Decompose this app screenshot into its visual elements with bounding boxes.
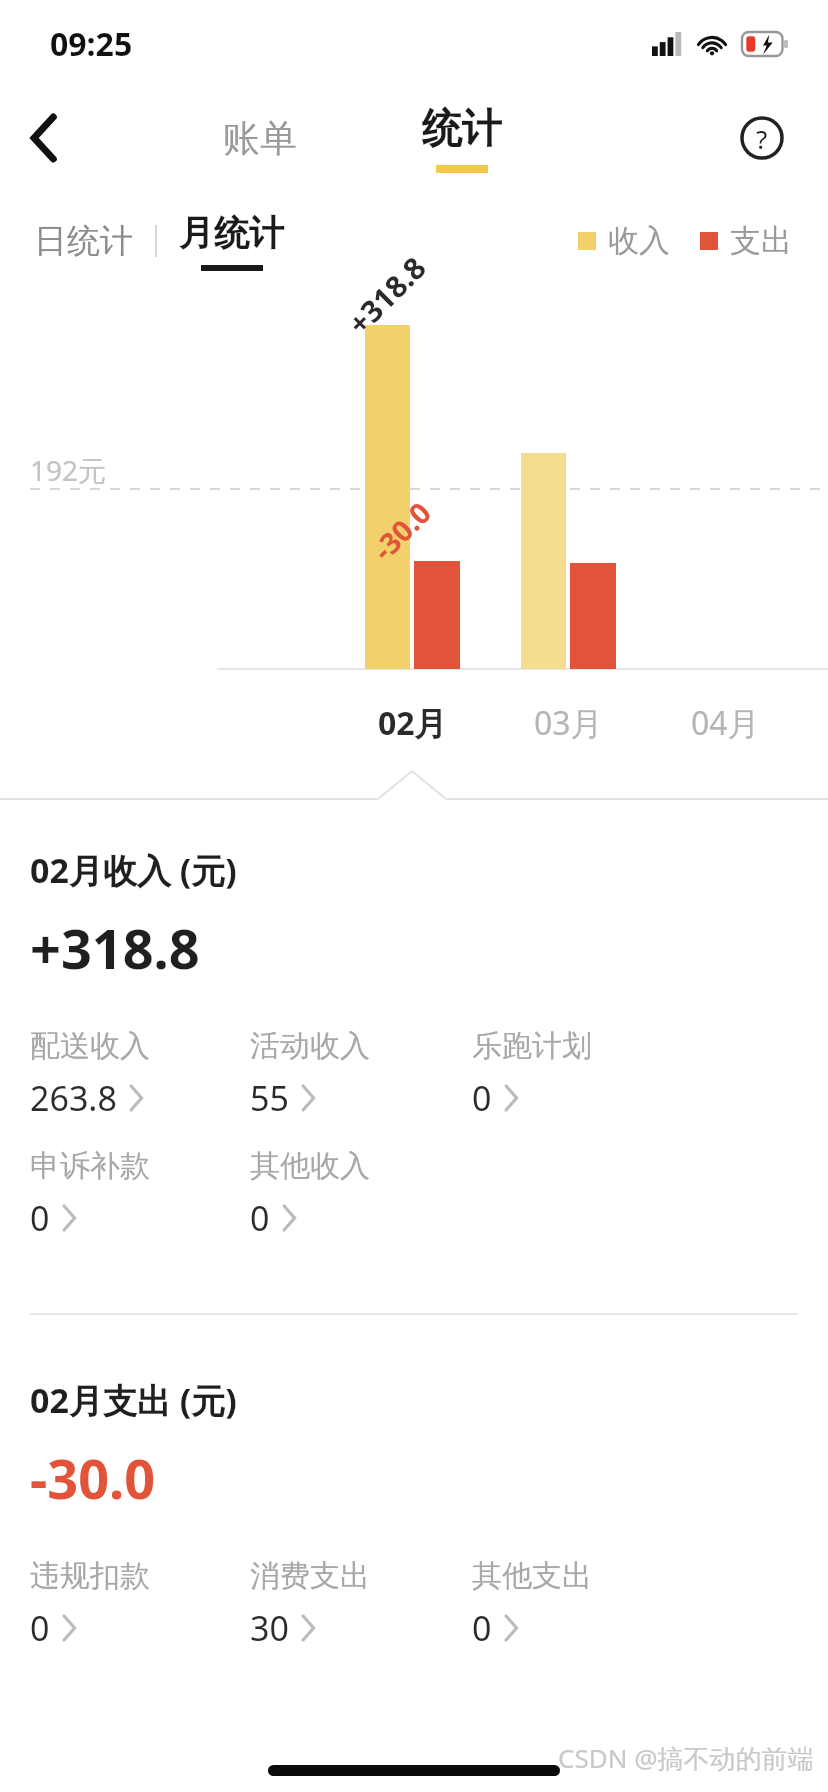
staticText: 02月支出 (元)	[30, 1377, 237, 1423]
staticText: 其他收入	[250, 1147, 370, 1185]
staticText: CSDN @搞不动的前端	[558, 1740, 814, 1776]
button[interactable]: 03月	[498, 693, 638, 753]
staticText: 收入	[608, 221, 670, 260]
button[interactable]: 配送收入	[30, 1027, 230, 1121]
staticText: 日统计	[34, 220, 133, 262]
button[interactable]: 消费支出	[250, 1557, 450, 1651]
button[interactable]: 乐跑计划	[472, 1027, 672, 1121]
button[interactable]: 日统计	[34, 201, 133, 281]
button[interactable]: 其他收入	[250, 1147, 450, 1241]
staticText: 配送收入	[30, 1027, 150, 1065]
staticText: 申诉补款	[30, 1147, 150, 1185]
button[interactable]: Help	[722, 98, 802, 178]
button[interactable]: 02月	[342, 693, 482, 753]
staticText: 30	[250, 1605, 289, 1651]
staticText: +318.8	[339, 247, 435, 343]
staticText: 0	[472, 1075, 492, 1121]
staticText: 04月	[691, 701, 760, 745]
button[interactable]: 账单	[200, 98, 320, 178]
staticText: 乐跑计划	[472, 1027, 592, 1065]
staticText: 统计	[422, 103, 502, 153]
staticText: 支出	[730, 221, 792, 260]
staticText: 0	[250, 1195, 270, 1241]
staticText: 违规扣款	[30, 1557, 150, 1595]
staticText: 55	[250, 1075, 289, 1121]
staticText: 账单	[223, 115, 297, 162]
button[interactable]: 活动收入	[250, 1027, 450, 1121]
staticText: -30.0	[30, 1441, 156, 1515]
staticText: 月统计	[179, 211, 284, 255]
button[interactable]: 其他支出	[472, 1557, 672, 1651]
staticText: ?	[756, 121, 768, 156]
staticText: 消费支出	[250, 1557, 370, 1595]
staticText: 0	[472, 1605, 492, 1651]
button[interactable]: 违规扣款	[30, 1557, 230, 1651]
staticText: 其他支出	[472, 1557, 592, 1595]
staticText: 09:25	[50, 22, 133, 66]
staticText: 192元	[30, 451, 107, 489]
staticText: 03月	[534, 701, 603, 745]
staticText: 02月收入 (元)	[30, 847, 237, 893]
button[interactable]: Back	[0, 93, 90, 183]
staticText: 0	[30, 1605, 50, 1651]
staticText: 02月	[378, 701, 447, 745]
staticText: +318.8	[30, 911, 200, 985]
staticText: 263.8	[30, 1075, 117, 1121]
staticText: -30.0	[363, 492, 439, 568]
button[interactable]: 申诉补款	[30, 1147, 230, 1241]
button[interactable]: 04月	[655, 693, 795, 753]
button[interactable]: 统计	[400, 88, 524, 188]
staticText: 活动收入	[250, 1027, 370, 1065]
button[interactable]: 月统计	[179, 196, 284, 286]
staticText: 0	[30, 1195, 50, 1241]
